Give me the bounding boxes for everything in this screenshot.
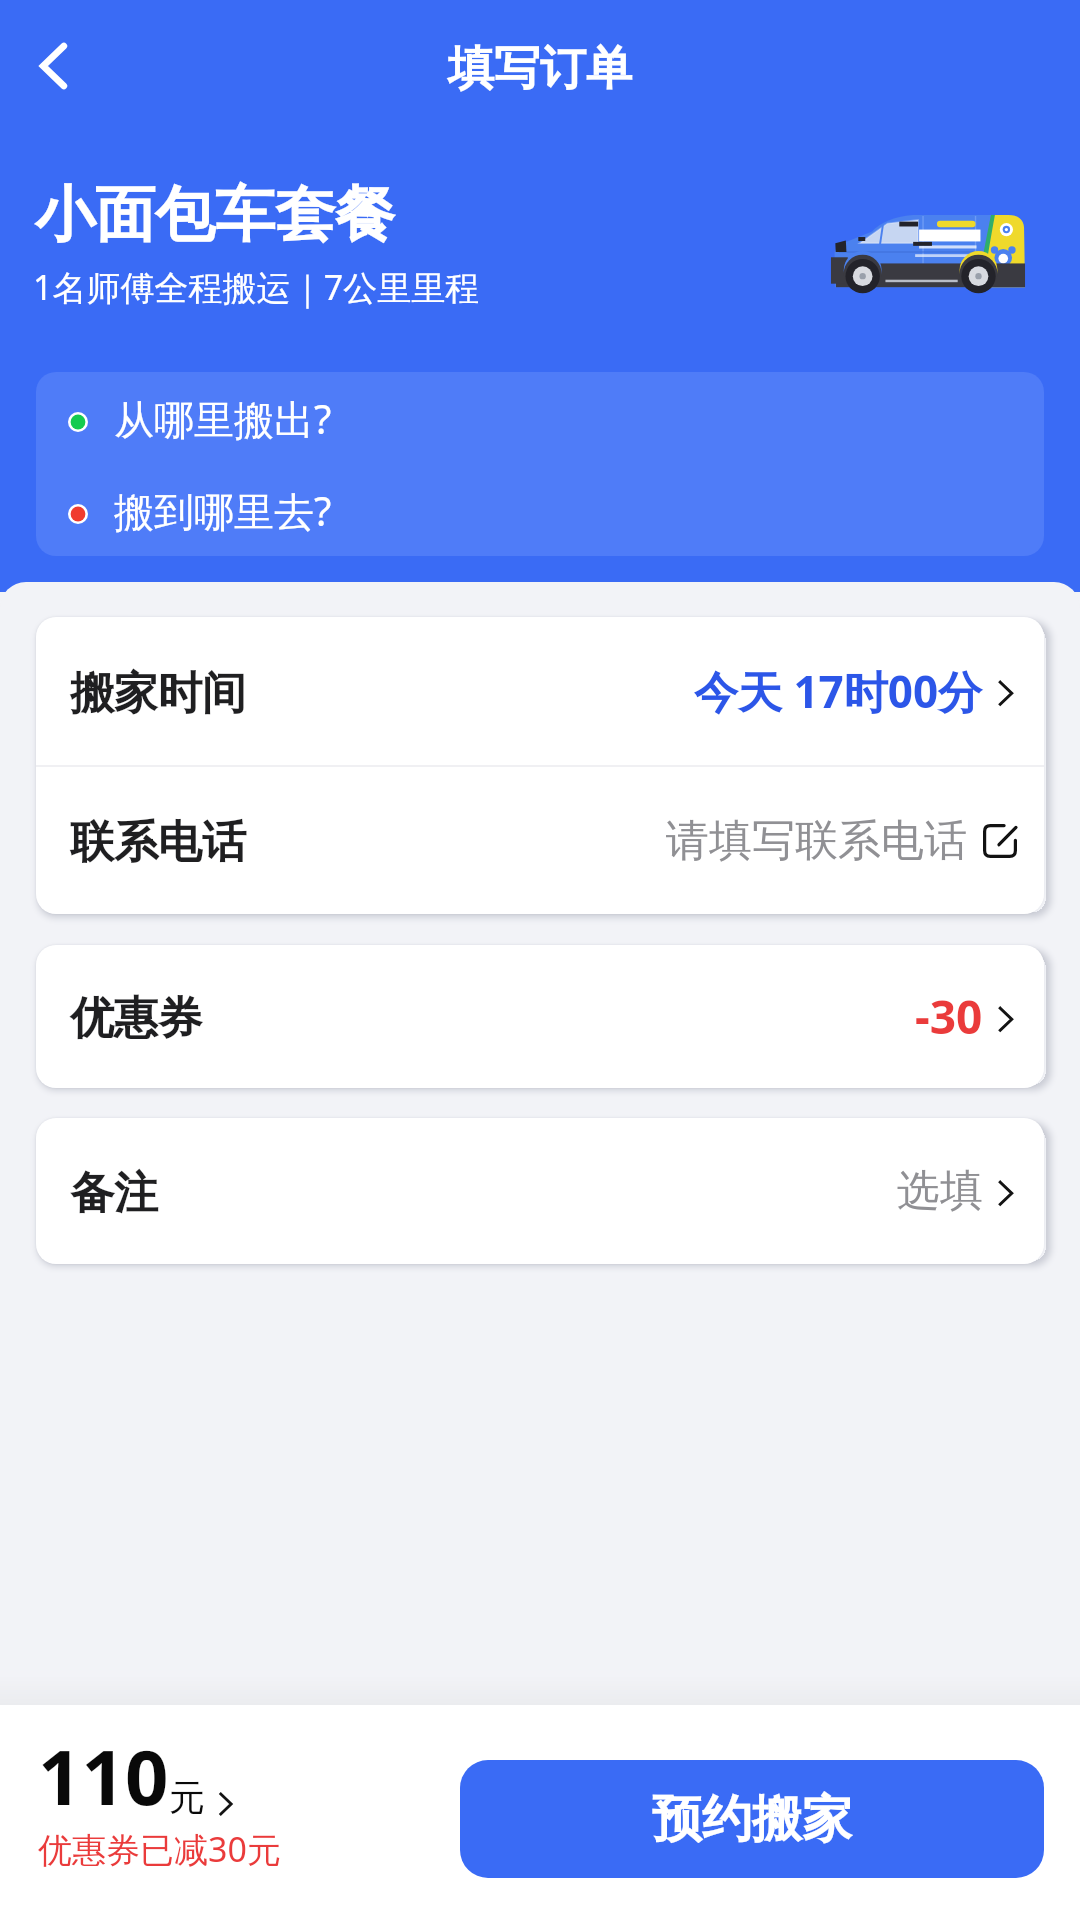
button[interactable]: 搬家时间	[36, 617, 1044, 765]
staticText: 联系电话	[70, 815, 246, 870]
button[interactable]: 备注	[36, 1118, 1044, 1264]
staticText: 搬家时间	[70, 666, 246, 721]
staticText: 1名师傅全程搬运｜7公里里程	[33, 264, 480, 310]
button[interactable]: 预约搬家	[460, 1760, 1044, 1878]
staticText: 填写订单	[448, 40, 632, 98]
button[interactable]: 从哪里搬出?	[36, 372, 1044, 464]
staticText: 请填写联系电话	[666, 814, 967, 868]
staticText: 元	[169, 1775, 205, 1820]
staticText: 小面包车套餐	[35, 177, 395, 253]
staticText: 110	[38, 1724, 169, 1828]
staticText: 预约搬家	[652, 1788, 852, 1851]
staticText: -30	[915, 985, 983, 1048]
staticText: 搬到哪里去?	[114, 483, 332, 538]
button[interactable]: 110	[38, 1724, 237, 1828]
button[interactable]: 搬到哪里去?	[36, 464, 1044, 556]
staticText: 今天 17时00分	[694, 661, 983, 721]
button[interactable]: 优惠券	[36, 945, 1044, 1088]
staticText: 选填	[897, 1164, 983, 1218]
staticText: 备注	[70, 1166, 158, 1221]
button[interactable]: 联系电话	[36, 767, 1044, 914]
button[interactable]: 返回	[0, 10, 112, 122]
staticText: 优惠券已减30元	[38, 1826, 281, 1872]
staticText: 优惠券	[70, 991, 202, 1046]
staticText: 从哪里搬出?	[114, 391, 332, 446]
